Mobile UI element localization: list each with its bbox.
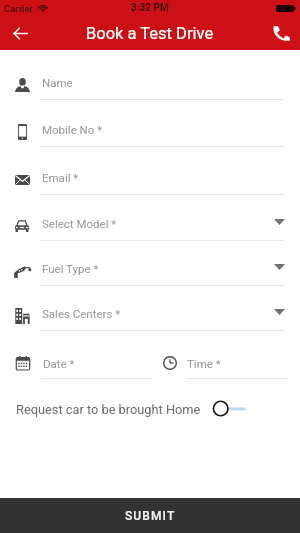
button[interactable]: Name: [0, 66, 300, 100]
button[interactable]: Back: [0, 16, 34, 50]
button[interactable]: Time *: [152, 349, 288, 379]
button[interactable]: Date *: [7, 349, 153, 379]
staticText: Book a Test Drive: [86, 24, 214, 43]
staticText: Sales Centers *: [42, 307, 121, 320]
button[interactable]: Email *: [0, 161, 300, 195]
staticText: SUBMIT: [125, 509, 176, 523]
staticText: Name: [42, 76, 73, 89]
button[interactable]: Fuel Type *: [0, 252, 300, 286]
staticText: Carrier: [4, 3, 33, 14]
staticText: Mobile No *: [42, 123, 103, 136]
button[interactable]: Mobile No *: [0, 113, 300, 147]
staticText: Email *: [42, 171, 79, 184]
button[interactable]: SUBMIT: [0, 498, 300, 533]
button[interactable]: Call: [266, 16, 300, 50]
button[interactable]: Sales Centers *: [0, 297, 300, 331]
button[interactable]: Select Model *: [0, 207, 300, 241]
staticText: Time *: [187, 357, 221, 370]
staticText: Select Model *: [42, 217, 117, 230]
staticText: Request car to be brought Home: [16, 402, 201, 417]
staticText: 3:32 PM: [131, 2, 169, 14]
button[interactable]: Request car to be brought Home: [0, 396, 300, 422]
staticText: Date *: [43, 357, 75, 370]
staticText: Fuel Type *: [42, 262, 99, 275]
